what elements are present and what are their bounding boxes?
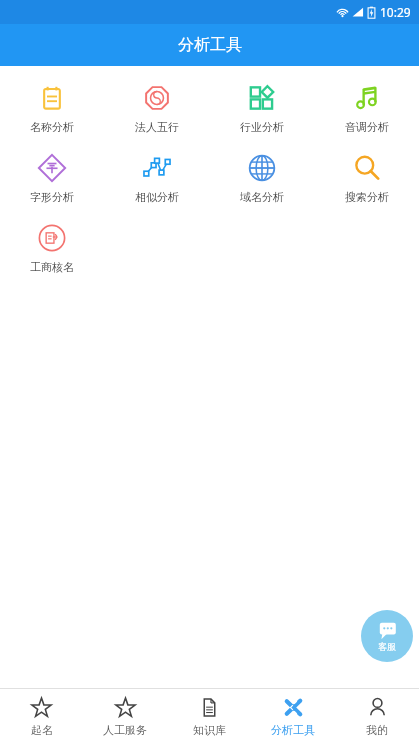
staticText: 人工服务 [103,723,147,737]
button[interactable]: 起名 [0,689,83,744]
staticText: 域名分析 [240,190,284,204]
button[interactable]: 客服 [361,610,413,662]
button[interactable]: 名称分析 [0,74,104,144]
staticText: 工商核名 [30,260,74,274]
button[interactable]: 音调分析 [314,74,419,144]
button[interactable]: 工商核名 [0,214,104,284]
staticText: 客服 [378,641,396,652]
staticText: 分析工具 [178,35,242,55]
staticText: 名称分析 [30,120,74,134]
button[interactable]: 行业分析 [209,74,314,144]
staticText: 字形分析 [30,190,74,204]
staticText: 音调分析 [345,120,389,134]
button[interactable]: 域名分析 [209,144,314,214]
staticText: 10:29 [380,4,411,20]
staticText: 知识库 [193,723,226,737]
staticText: 搜索分析 [345,190,389,204]
button[interactable]: 相似分析 [104,144,209,214]
staticText: 我的 [366,723,388,737]
button[interactable]: 分析工具 [251,689,335,744]
staticText: 相似分析 [135,190,179,204]
button[interactable]: 人工服务 [83,689,167,744]
button[interactable]: 字形分析 [0,144,104,214]
staticText: 法人五行 [135,120,179,134]
button[interactable]: 知识库 [167,689,251,744]
staticText: 分析工具 [271,723,315,737]
button[interactable]: 法人五行 [104,74,209,144]
button[interactable]: 我的 [335,689,419,744]
staticText: 行业分析 [240,120,284,134]
button[interactable]: 搜索分析 [314,144,419,214]
staticText: 起名 [31,723,53,737]
